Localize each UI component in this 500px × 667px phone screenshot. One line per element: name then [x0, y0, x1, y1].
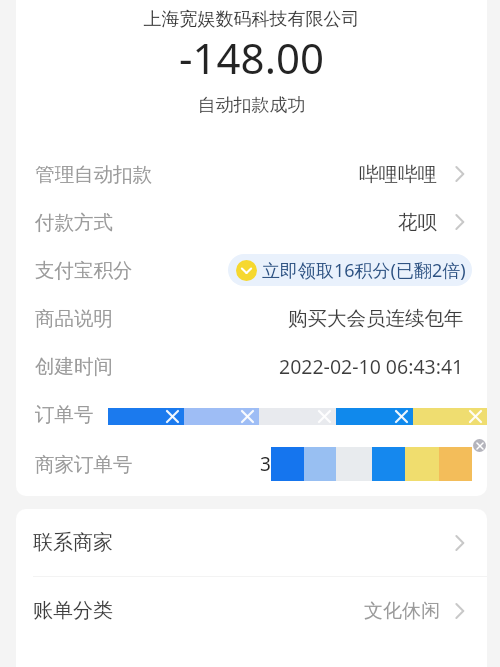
staticText: 哔哩哔哩 [359, 162, 437, 187]
staticText: 2022-02-10 06:43:41 [279, 353, 464, 380]
staticText: 订单号 [35, 402, 94, 427]
button[interactable]: 商品说明 [16, 294, 487, 342]
staticText: 购买大会员连续包年 [288, 306, 464, 331]
button[interactable]: 立即领取16积分(已翻2倍) [228, 254, 472, 286]
staticText: 上海宽娱数码科技有限公司 [16, 8, 487, 31]
staticText: 立即领取16积分(已翻2倍) [262, 258, 466, 283]
button[interactable]: 管理自动扣款 [16, 150, 487, 198]
button[interactable]: 付款方式 [16, 198, 487, 246]
button[interactable]: 账单分类 [16, 577, 487, 644]
staticText: 商家订单号 [35, 452, 133, 477]
staticText: 文化休闲 [364, 599, 440, 623]
staticText: 自动扣款成功 [16, 94, 487, 117]
staticText: 付款方式 [35, 210, 113, 235]
staticText: 3 [260, 451, 271, 477]
button[interactable]: Close [473, 439, 486, 452]
staticText: -148.00 [16, 29, 487, 86]
staticText: 联系商家 [33, 530, 113, 555]
staticText: 商品说明 [35, 306, 113, 331]
button[interactable]: 创建时间 [16, 342, 487, 390]
staticText: 支付宝积分 [35, 258, 133, 283]
staticText: 创建时间 [35, 354, 113, 379]
button[interactable]: 支付宝积分 [16, 246, 487, 294]
staticText: 花呗 [398, 210, 437, 235]
button[interactable]: 联系商家 [16, 509, 487, 576]
staticText: 账单分类 [33, 598, 113, 623]
staticText: 管理自动扣款 [35, 162, 152, 187]
